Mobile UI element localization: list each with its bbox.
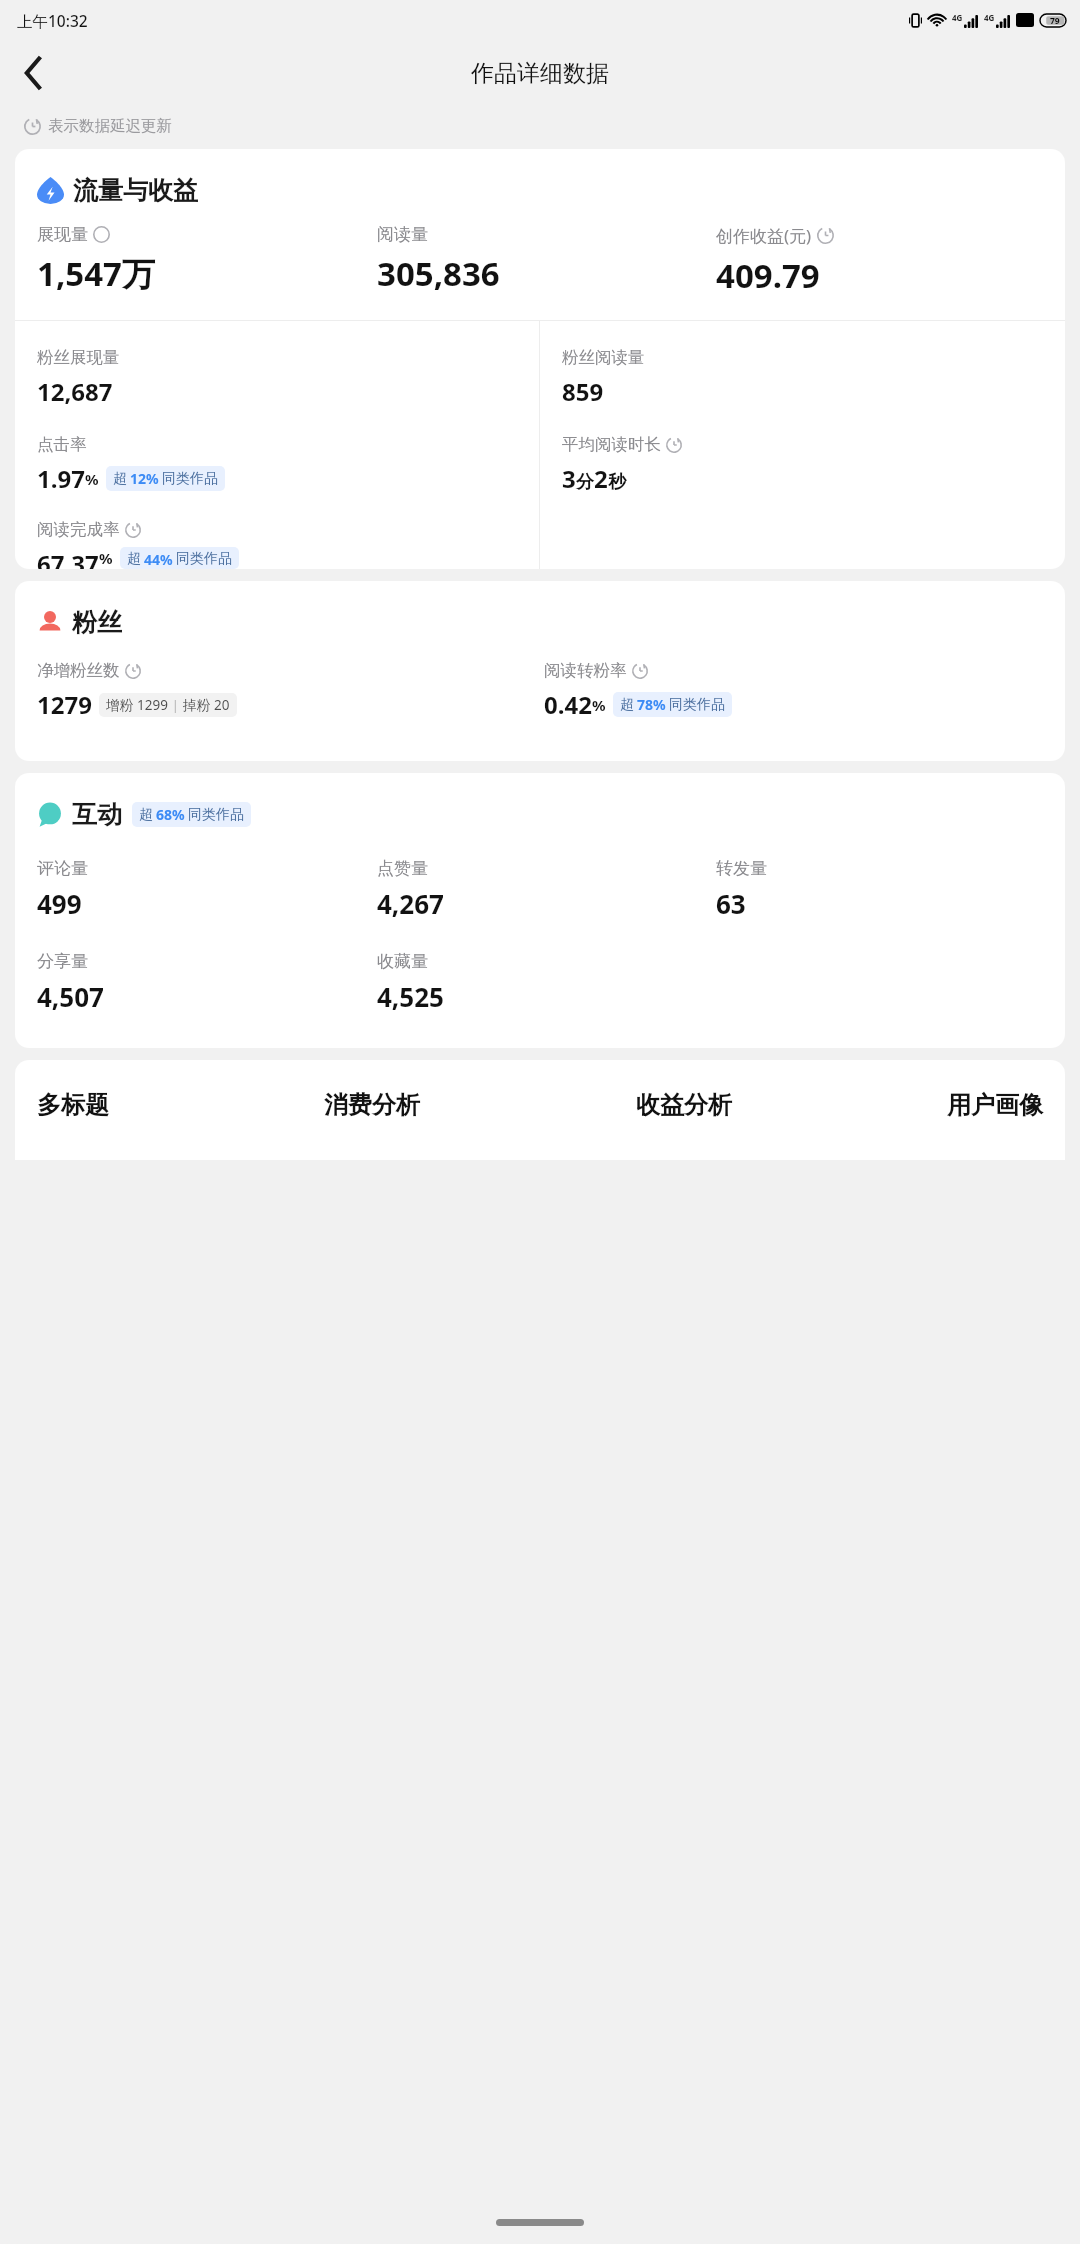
button[interactable]: 多标题 [33,1086,113,1124]
staticText: 多标题 [37,1090,109,1120]
staticText: 用户画像 [947,1090,1043,1120]
button[interactable]: 分享量 [37,951,377,1014]
staticText: 收藏量 [377,951,428,972]
button[interactable]: 收益分析 [632,1086,736,1124]
staticText: 4,525 [377,979,444,1014]
staticText: 79 [1050,15,1060,27]
button[interactable]: 阅读转粉率 [544,660,1051,721]
staticText: 2 [594,462,608,495]
staticText: 44% [144,550,173,566]
staticText: 转发量 [716,858,767,879]
staticText: | [172,697,179,713]
staticText: 409.79 [716,253,820,298]
button[interactable]: 净增粉丝数 [37,660,544,721]
button[interactable]: 收藏量 [377,951,716,1014]
staticText: 分享量 [37,951,88,972]
staticText: 305,836 [377,251,500,296]
staticText: 收益分析 [636,1090,732,1120]
staticText: 同类作品 [669,696,725,714]
button[interactable]: 展现量 [37,224,377,296]
staticText: 12% [130,469,159,488]
staticText: 分 [576,471,594,494]
staticText: 68% [156,805,185,824]
button[interactable]: 阅读量 [377,224,716,296]
button[interactable]: 粉丝阅读量 [562,347,645,408]
staticText: 同类作品 [176,550,232,566]
staticText: 表示数据延迟更新 [48,116,172,136]
staticText: 流量与收益 [73,175,198,206]
staticText: 阅读转粉率 [544,660,627,681]
staticText: 增粉 [106,697,133,714]
button[interactable]: 点赞量 [377,858,716,921]
staticText: 859 [562,375,604,408]
staticText: 0.42 [544,688,592,721]
staticText: 12,687 [37,375,113,408]
staticText: 63 [716,886,746,921]
staticText: 净增粉丝数 [37,660,120,681]
staticText: 67.37 [37,547,99,569]
staticText: % [592,695,606,715]
staticText: 1,547万 [37,251,155,296]
staticText: 掉粉 [183,697,210,714]
button[interactable]: Back [8,47,60,99]
staticText: 阅读量 [377,224,428,245]
staticText: 4G [984,12,995,23]
staticText: 78% [637,695,666,714]
staticText: 超 [113,470,127,488]
staticText: % [85,469,99,489]
staticText: 上午10:32 [17,10,88,31]
staticText: 同类作品 [188,806,244,824]
staticText: 点击率 [37,434,87,455]
staticText: 评论量 [37,858,88,879]
button[interactable]: 转发量 [716,858,1055,921]
button[interactable]: 点击率 [37,434,225,495]
staticText: 平均阅读时长 [562,434,661,455]
staticText: 粉丝 [72,607,122,638]
staticText: 4,507 [37,979,104,1014]
staticText: % [99,548,113,568]
button[interactable]: 创作收益(元) [716,224,1055,298]
staticText: 超 [127,550,141,566]
staticText: 1.97 [37,462,85,495]
staticText: 消费分析 [324,1090,420,1120]
staticText: 499 [37,886,82,921]
button[interactable]: 用户画像 [943,1086,1047,1124]
button[interactable]: 评论量 [37,858,377,921]
staticText: 超 [139,806,153,824]
button[interactable]: 粉丝展现量 [37,347,120,408]
staticText: 点赞量 [377,858,428,879]
button[interactable]: 消费分析 [320,1086,424,1124]
staticText: 20 [214,696,230,714]
staticText: 粉丝阅读量 [562,347,645,368]
staticText: 超 [620,696,634,714]
staticText: 创作收益(元) [716,224,812,247]
staticText: 阅读完成率 [37,519,120,540]
staticText: 4,267 [377,886,444,921]
staticText: 作品详细数据 [471,59,609,88]
staticText: 粉丝展现量 [37,347,120,368]
staticText: 4G [952,12,963,23]
staticText: 秒 [608,471,626,494]
staticText: 展现量 [37,224,88,245]
staticText: 互动 [72,799,122,830]
staticText: 同类作品 [162,470,218,488]
staticText: 3 [562,462,576,495]
button[interactable]: 阅读完成率 [37,519,239,569]
staticText: 1279 [37,688,92,721]
staticText: 1299 [137,696,168,714]
